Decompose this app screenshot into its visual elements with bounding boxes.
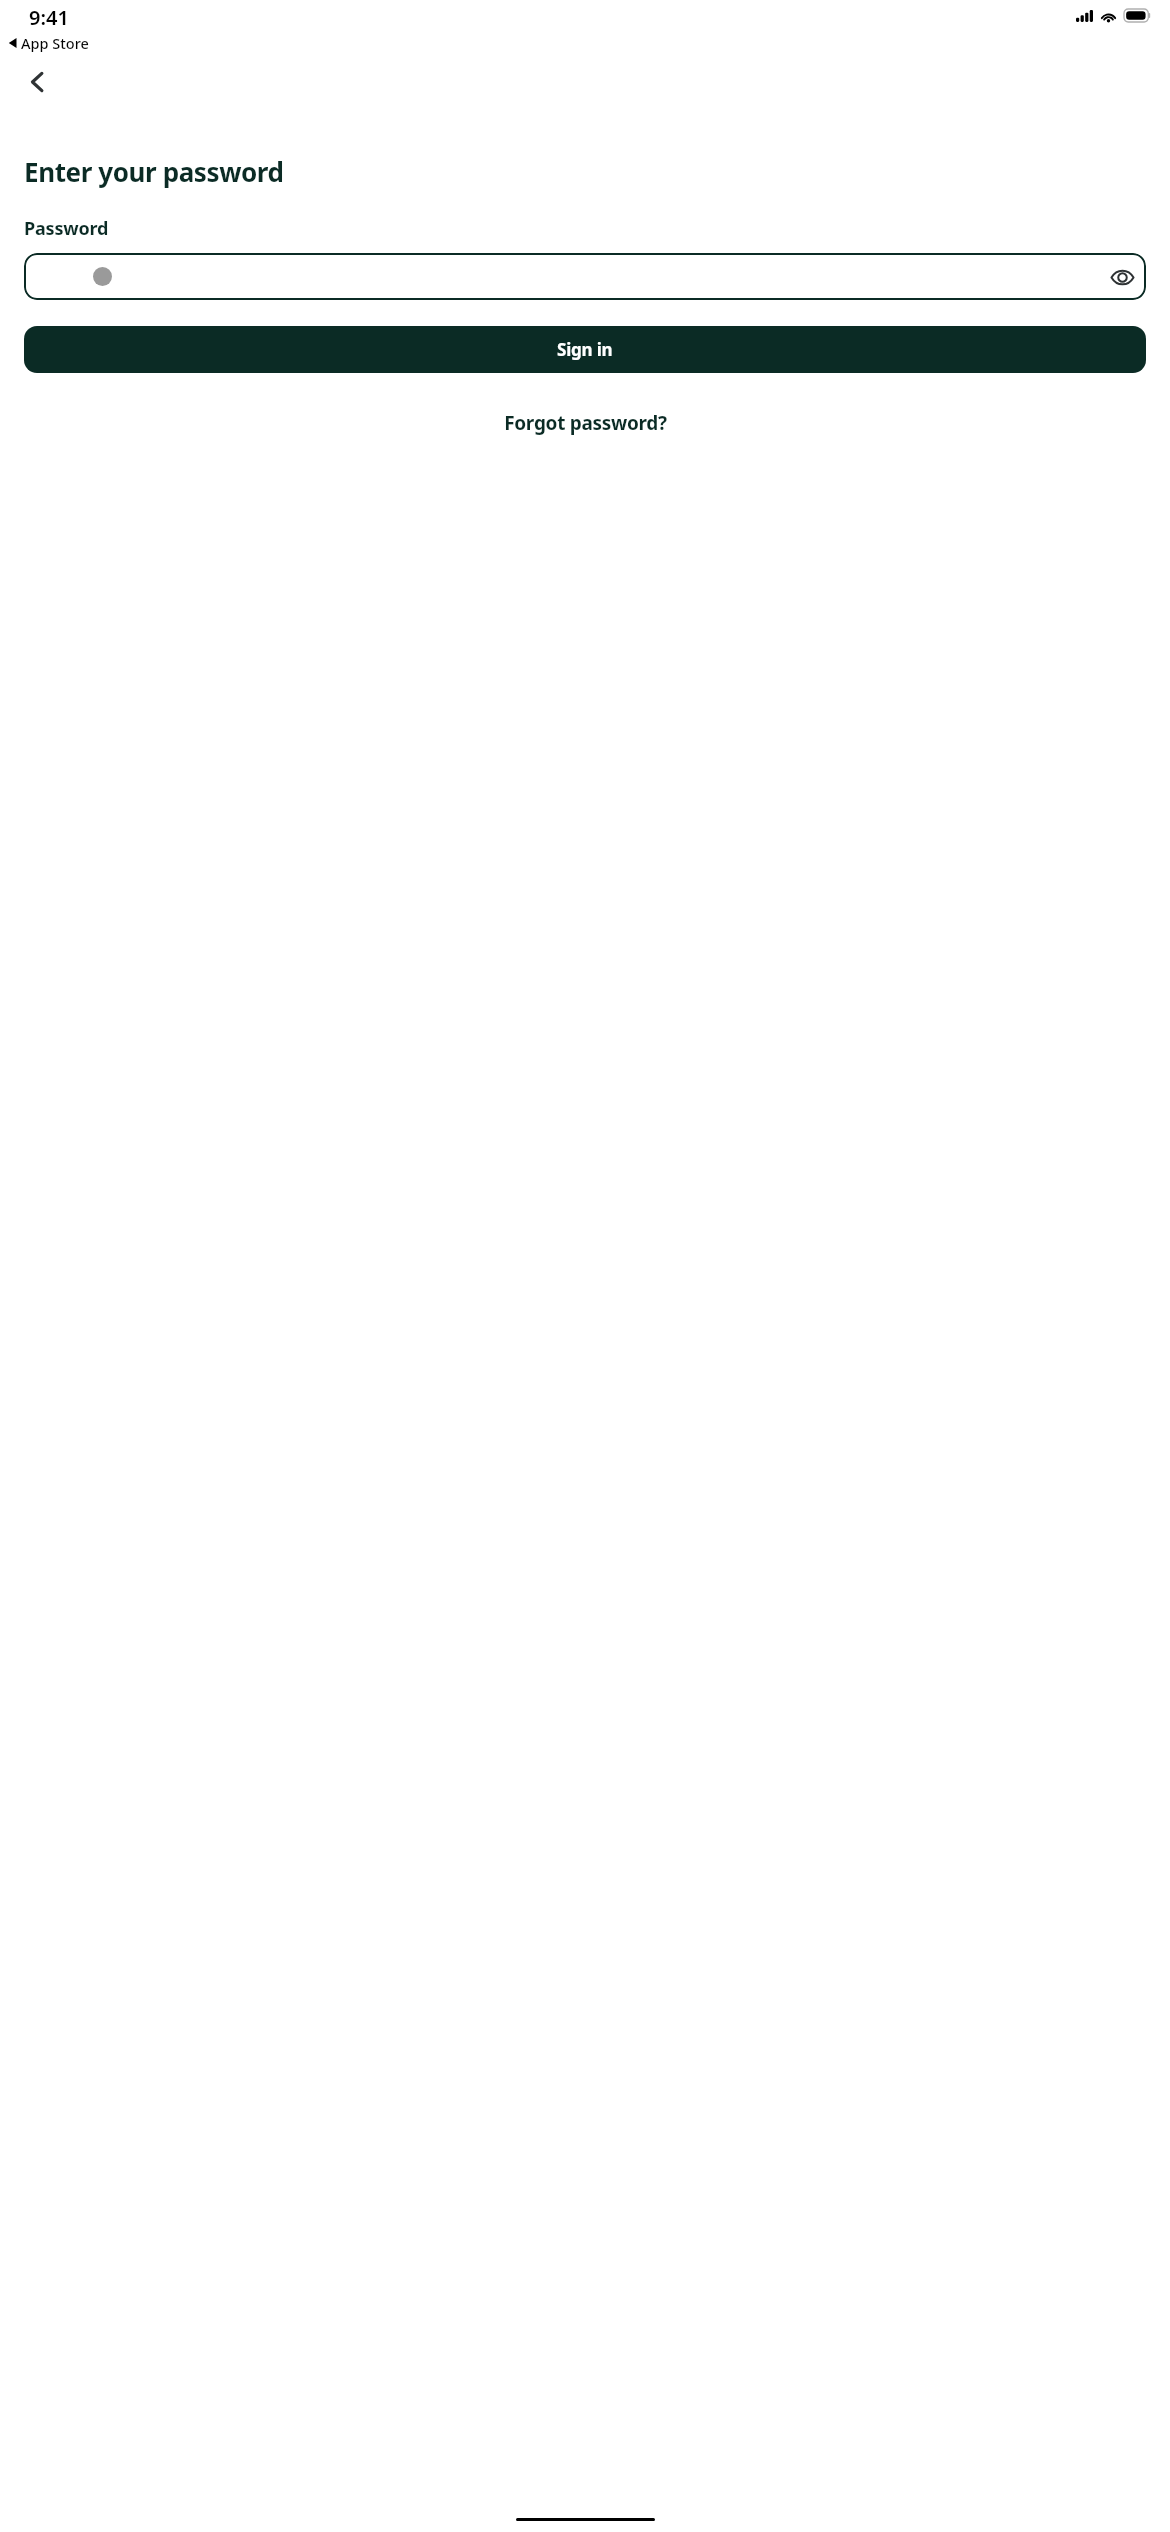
button[interactable]: Show password — [24, 253, 1146, 300]
staticText: Forgot password? — [504, 410, 667, 436]
button[interactable]: Sign in — [24, 326, 1146, 373]
staticText: App Store — [21, 33, 89, 53]
staticText: Sign in — [557, 338, 613, 361]
button[interactable]: Show password — [1105, 260, 1139, 294]
button[interactable]: App Store — [8, 33, 89, 53]
staticText: Password — [24, 216, 109, 241]
button[interactable]: Back — [12, 56, 64, 108]
button[interactable]: Forgot password? — [488, 402, 683, 444]
staticText: 9:41 — [29, 4, 69, 31]
staticText: Enter your password — [24, 154, 284, 189]
